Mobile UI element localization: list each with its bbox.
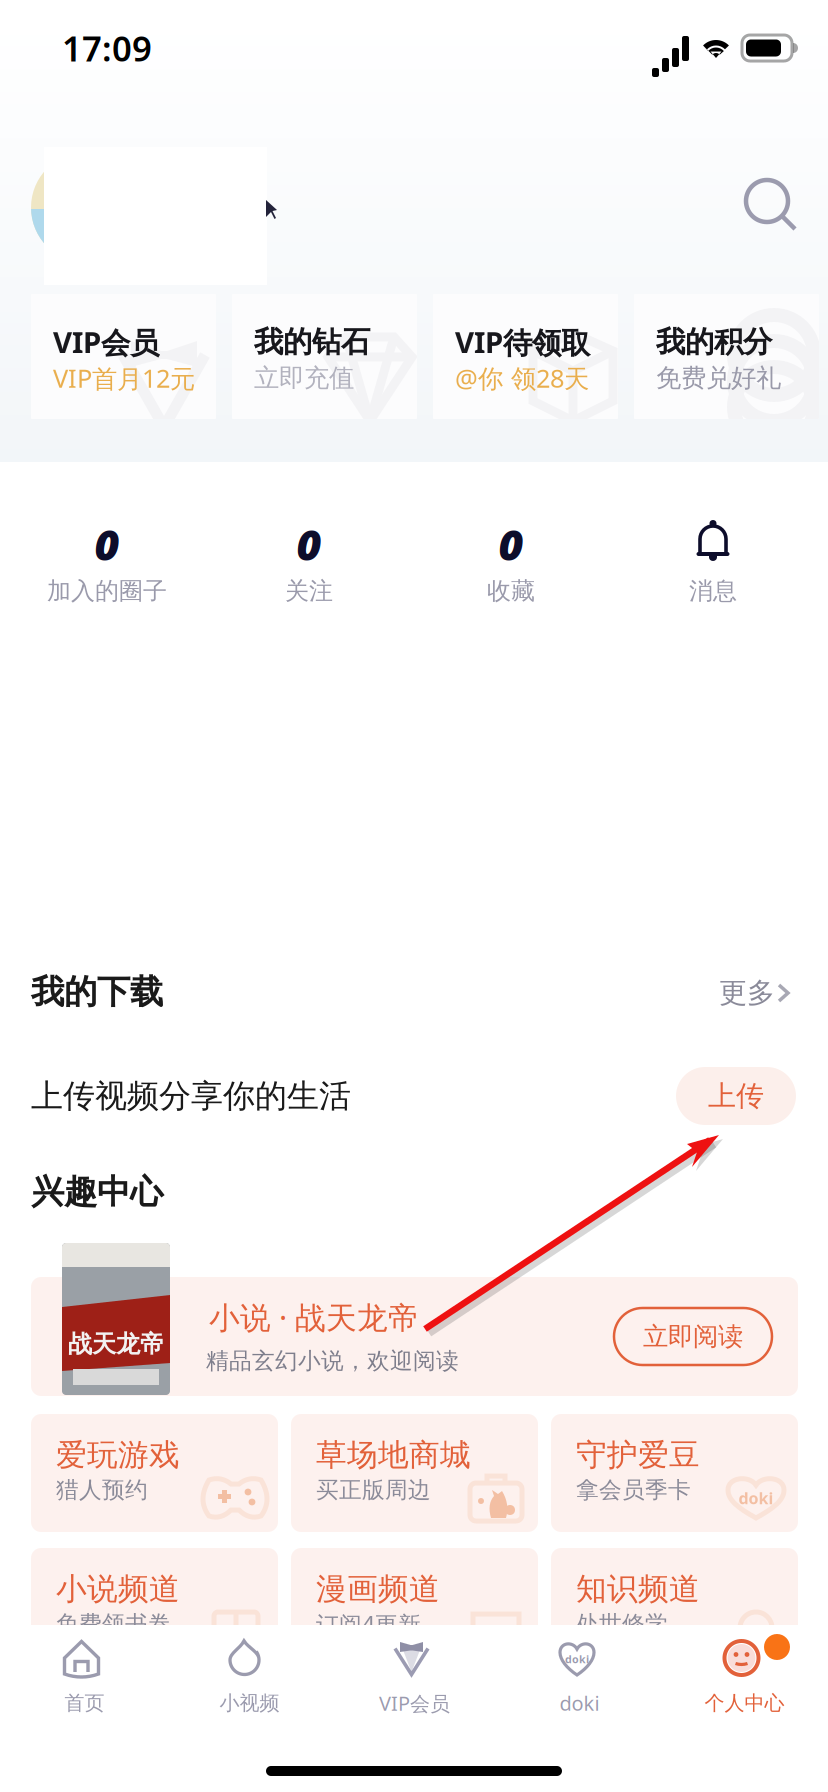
- staticText: doki: [559, 1690, 599, 1716]
- button[interactable]: 首页: [2, 1625, 167, 1735]
- staticText: 精品玄幻小说，欢迎阅读: [206, 1347, 459, 1375]
- button[interactable]: 知识频道: [551, 1548, 798, 1666]
- staticText: 我的下载: [31, 971, 163, 1012]
- staticText: 更多: [719, 976, 775, 1010]
- button[interactable]: 0: [6, 490, 208, 610]
- button[interactable]: [31, 1277, 798, 1396]
- staticText: @你 领28天: [455, 361, 589, 395]
- staticText: 小说 · 战天龙帝: [209, 1297, 419, 1337]
- staticText: 关注: [285, 576, 333, 606]
- button[interactable]: doki: [551, 1414, 798, 1532]
- staticText: 草场地商城: [316, 1436, 471, 1474]
- staticText: 加入的圈子: [47, 576, 167, 606]
- staticText: 0: [296, 516, 321, 572]
- button[interactable]: 搜索: [737, 171, 809, 243]
- staticText: 知识频道: [576, 1570, 700, 1608]
- staticText: 上传: [708, 1079, 764, 1113]
- staticText: VIP会员: [53, 322, 159, 361]
- staticText: 0: [498, 516, 523, 572]
- staticText: 处世修学: [576, 1610, 668, 1638]
- button[interactable]: doki: [497, 1625, 662, 1735]
- staticText: doki: [738, 1487, 773, 1509]
- button[interactable]: VIP会员: [31, 294, 216, 419]
- staticText: 上传视频分享你的生活: [31, 1076, 351, 1116]
- staticText: 战天龙帝: [68, 1329, 164, 1359]
- staticText: 0: [94, 516, 119, 572]
- button[interactable]: 0: [410, 490, 612, 610]
- staticText: 首页: [64, 1691, 104, 1715]
- staticText: 17:09: [62, 25, 152, 71]
- button[interactable]: VIP会员: [332, 1625, 497, 1735]
- staticText: doki: [565, 1652, 589, 1666]
- button[interactable]: VIP待领取: [433, 294, 618, 419]
- staticText: VIP首月12元: [53, 361, 195, 395]
- staticText: 漫画频道: [316, 1570, 440, 1608]
- button[interactable]: 消息: [612, 490, 814, 610]
- staticText: VIP会员: [379, 1690, 450, 1716]
- staticText: 收藏: [487, 576, 535, 606]
- button[interactable]: 0: [208, 490, 410, 610]
- staticText: 免费领书卷: [56, 1610, 171, 1638]
- staticText: 消息: [689, 576, 737, 606]
- staticText: 小视频: [219, 1691, 279, 1715]
- staticText: 我的积分: [656, 324, 772, 360]
- button[interactable]: 上传: [676, 1067, 796, 1125]
- staticText: 买正版周边: [316, 1476, 431, 1504]
- button[interactable]: 我的钻石: [232, 294, 417, 419]
- staticText: 个人中心: [704, 1691, 784, 1715]
- staticText: 拿会员季卡: [576, 1476, 691, 1504]
- staticText: 免费兑好礼: [656, 362, 781, 393]
- staticText: 立即充值: [254, 362, 354, 393]
- staticText: 订阅4更新: [316, 1609, 421, 1639]
- button[interactable]: 爱玩游戏: [31, 1414, 278, 1532]
- button[interactable]: 草场地商城: [291, 1414, 538, 1532]
- button[interactable]: 漫画频道: [291, 1548, 538, 1666]
- staticText: 爱玩游戏: [56, 1436, 180, 1474]
- staticText: 兴趣中心: [31, 1171, 163, 1212]
- staticText: 小说频道: [56, 1570, 180, 1608]
- staticText: 我的钻石: [254, 324, 370, 360]
- button[interactable]: 小视频: [167, 1625, 332, 1735]
- staticText: 守护爱豆: [576, 1436, 700, 1474]
- button[interactable]: 更多: [719, 963, 819, 1023]
- staticText: VIP待领取: [455, 322, 590, 361]
- button[interactable]: 立即阅读: [614, 1308, 772, 1365]
- button[interactable]: 个人中心: [662, 1625, 827, 1735]
- staticText: 猎人预约: [56, 1476, 148, 1504]
- button[interactable]: 我的积分: [634, 294, 819, 419]
- staticText: 立即阅读: [643, 1321, 743, 1352]
- button[interactable]: 小说频道: [31, 1548, 278, 1666]
